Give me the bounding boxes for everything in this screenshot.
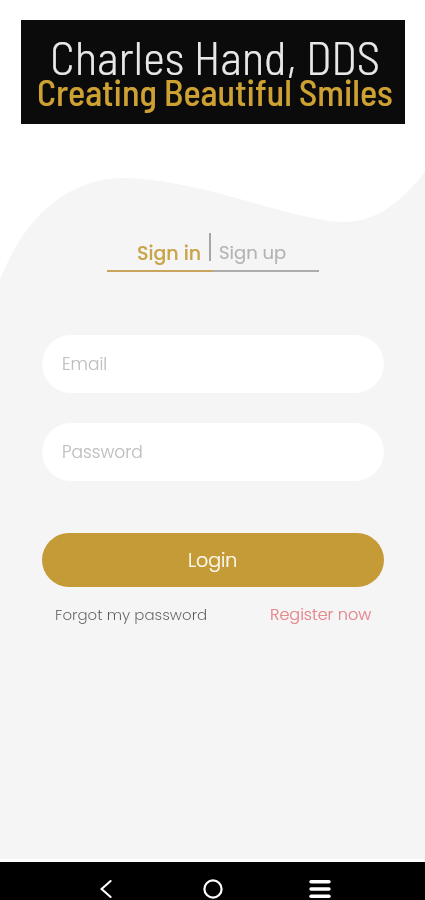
button[interactable]: Recent apps <box>300 870 340 900</box>
button[interactable]: Back <box>86 870 126 900</box>
staticText: Sign up <box>219 240 287 265</box>
button[interactable]: Sign up <box>213 235 319 269</box>
button[interactable]: Forgot my password <box>55 604 208 625</box>
button[interactable]: Register now <box>270 603 372 625</box>
staticText: Charles Hand, DDS <box>50 28 380 84</box>
staticText: Sign in <box>137 240 201 267</box>
staticText: Email <box>62 352 108 376</box>
button[interactable]: Email <box>42 335 384 393</box>
button[interactable]: Login <box>42 533 384 587</box>
button[interactable]: Password <box>42 423 384 481</box>
staticText: Forgot my password <box>55 604 208 625</box>
staticText: Password <box>62 440 143 464</box>
staticText: Register now <box>270 603 372 625</box>
staticText: Creating Beautiful Smiles <box>37 70 393 113</box>
staticText: Login <box>188 547 238 574</box>
button[interactable]: Home <box>193 870 233 900</box>
button[interactable]: Sign in <box>107 235 210 269</box>
